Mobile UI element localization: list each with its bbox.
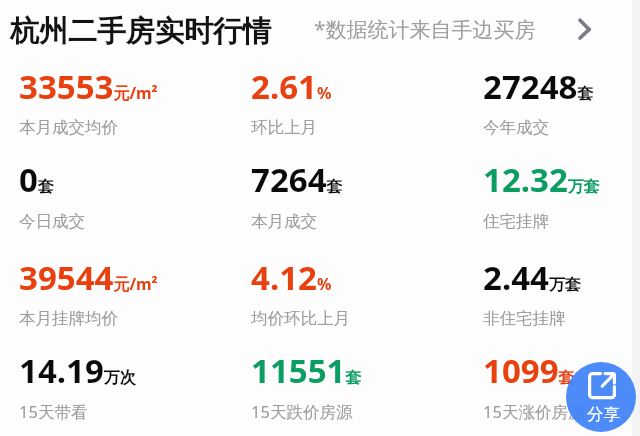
staticText: 15天跌价房源	[251, 400, 353, 423]
button[interactable]: 14.19万次	[17, 342, 249, 404]
staticText: 2.44万套	[483, 255, 581, 300]
staticText: 15天涨价房源	[483, 400, 585, 423]
staticText: 住宅挂牌	[483, 211, 549, 232]
staticText: *数据统计来自手边买房	[314, 15, 536, 44]
button[interactable]: 27248套	[481, 58, 631, 120]
button[interactable]: 39544元/m²	[17, 249, 249, 311]
staticText: 39544元/m²	[19, 255, 158, 300]
staticText: 今年成交	[483, 117, 549, 138]
button[interactable]: 分享	[566, 362, 636, 432]
button[interactable]: 2.44万套	[481, 249, 631, 311]
button[interactable]: 0套	[17, 151, 249, 213]
staticText: 分享	[587, 404, 620, 425]
staticText: 27248套	[483, 64, 594, 109]
staticText: 0套	[19, 157, 54, 202]
button[interactable]: 11551套	[249, 342, 481, 404]
button[interactable]: 查看详情	[570, 11, 600, 41]
staticText: 14.19万次	[19, 348, 136, 393]
button[interactable]: 4.12%	[249, 249, 481, 311]
staticText: 本月成交均价	[19, 117, 118, 138]
staticText: 4.12%	[251, 255, 332, 300]
staticText: 非住宅挂牌	[483, 308, 566, 329]
staticText: 2.61%	[251, 64, 332, 109]
staticText: 均价环比上月	[251, 308, 350, 329]
staticText: 33553元/m²	[19, 64, 158, 109]
staticText: 今日成交	[19, 211, 85, 232]
button[interactable]: 33553元/m²	[17, 58, 249, 120]
staticText: 1099套	[483, 348, 575, 393]
button[interactable]: 杭州二手房实时行情	[0, 0, 640, 58]
staticText: 15天带看	[19, 400, 88, 423]
button[interactable]: 2.61%	[249, 58, 481, 120]
staticText: 本月成交	[251, 211, 317, 232]
staticText: 11551套	[251, 348, 362, 393]
staticText: 杭州二手房实时行情	[10, 13, 271, 50]
staticText: 环比上月	[251, 117, 317, 138]
staticText: 7264套	[251, 157, 343, 202]
button[interactable]: 1099套	[481, 342, 631, 404]
staticText: 12.32万套	[483, 157, 600, 202]
button[interactable]: 12.32万套	[481, 151, 631, 213]
staticText: 本月挂牌均价	[19, 308, 118, 329]
button[interactable]: 7264套	[249, 151, 481, 213]
